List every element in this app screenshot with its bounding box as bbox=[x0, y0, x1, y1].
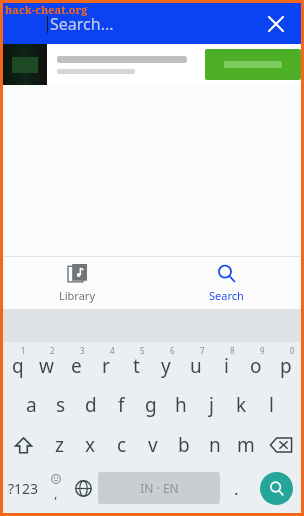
staticText: Library bbox=[59, 288, 96, 303]
button[interactable]: Search bbox=[260, 472, 293, 505]
button[interactable]: Change language bbox=[69, 465, 98, 511]
staticText: ?123 bbox=[8, 479, 39, 498]
staticText: r bbox=[102, 353, 110, 379]
staticText: Search... bbox=[50, 13, 114, 35]
button[interactable]: j bbox=[196, 385, 226, 425]
button[interactable]: 4 bbox=[91, 342, 121, 385]
staticText: z bbox=[55, 432, 64, 458]
staticText: d bbox=[85, 392, 97, 418]
staticText: g bbox=[145, 392, 157, 418]
button[interactable]: 6 bbox=[151, 342, 181, 385]
button[interactable]: . bbox=[220, 465, 252, 511]
staticText: f bbox=[118, 392, 125, 418]
staticText: o bbox=[250, 353, 262, 379]
staticText: u bbox=[190, 353, 202, 379]
button[interactable]: n bbox=[199, 425, 230, 465]
staticText: l bbox=[269, 392, 274, 418]
button[interactable]: Backspace bbox=[261, 425, 301, 465]
button[interactable]: d bbox=[76, 385, 106, 425]
staticText: i bbox=[224, 353, 229, 379]
button[interactable]: Shift bbox=[3, 425, 44, 465]
staticText: 3 bbox=[80, 345, 85, 356]
staticText: q bbox=[12, 353, 24, 379]
button[interactable]: a bbox=[17, 385, 46, 425]
staticText: b bbox=[178, 432, 190, 458]
button[interactable]: h bbox=[166, 385, 196, 425]
staticText: w bbox=[39, 353, 54, 379]
staticText: hack-cheat.org bbox=[5, 2, 88, 17]
button[interactable]: 5 bbox=[121, 342, 151, 385]
button[interactable]: m bbox=[230, 425, 261, 465]
button[interactable]: k bbox=[226, 385, 256, 425]
button[interactable]: x bbox=[75, 425, 106, 465]
button[interactable]: s bbox=[46, 385, 76, 425]
button[interactable]: f bbox=[106, 385, 136, 425]
button[interactable]: 3 bbox=[61, 342, 91, 385]
button[interactable]: v bbox=[137, 425, 168, 465]
staticText: m bbox=[237, 432, 255, 458]
button[interactable]: 1 bbox=[3, 342, 32, 385]
staticText: y bbox=[161, 353, 171, 379]
staticText: IN · EN bbox=[140, 480, 179, 496]
staticText: 6 bbox=[170, 345, 175, 356]
button[interactable]: 8 bbox=[211, 342, 241, 385]
staticText: 2 bbox=[50, 345, 55, 356]
staticText: c bbox=[117, 432, 127, 458]
button[interactable]: Search bbox=[152, 257, 301, 309]
staticText: x bbox=[85, 432, 96, 458]
staticText: h bbox=[175, 392, 187, 418]
staticText: e bbox=[71, 353, 82, 379]
staticText: 4 bbox=[110, 345, 115, 356]
staticText: 0 bbox=[290, 345, 295, 356]
button[interactable]: c bbox=[106, 425, 137, 465]
staticText: n bbox=[209, 432, 221, 458]
button[interactable]: g bbox=[136, 385, 166, 425]
staticText: 9 bbox=[260, 345, 265, 356]
staticText: p bbox=[280, 353, 292, 379]
staticText: 7 bbox=[200, 345, 205, 356]
staticText: 8 bbox=[230, 345, 235, 356]
button[interactable]: Close search bbox=[259, 7, 293, 41]
button[interactable]: b bbox=[168, 425, 199, 465]
button[interactable]: Library bbox=[3, 257, 152, 309]
button[interactable]: z bbox=[44, 425, 75, 465]
button[interactable]: Emoji and comma bbox=[43, 465, 69, 511]
button[interactable]: IN · EN bbox=[98, 472, 220, 504]
staticText: Search bbox=[209, 288, 244, 303]
staticText: s bbox=[56, 392, 66, 418]
staticText: 1 bbox=[21, 345, 26, 356]
staticText: 5 bbox=[140, 345, 145, 356]
button[interactable]: ?123 bbox=[3, 465, 43, 511]
staticText: j bbox=[209, 392, 214, 418]
button[interactable]: 7 bbox=[181, 342, 211, 385]
button[interactable]: 9 bbox=[241, 342, 271, 385]
staticText: a bbox=[26, 392, 37, 418]
staticText: , bbox=[54, 484, 58, 502]
button[interactable]: 0 bbox=[271, 342, 301, 385]
staticText: t bbox=[133, 353, 140, 379]
staticText: v bbox=[148, 432, 158, 458]
button[interactable]: 2 bbox=[32, 342, 61, 385]
staticText: . bbox=[234, 477, 239, 500]
button[interactable]: l bbox=[256, 385, 286, 425]
staticText: k bbox=[236, 392, 247, 418]
